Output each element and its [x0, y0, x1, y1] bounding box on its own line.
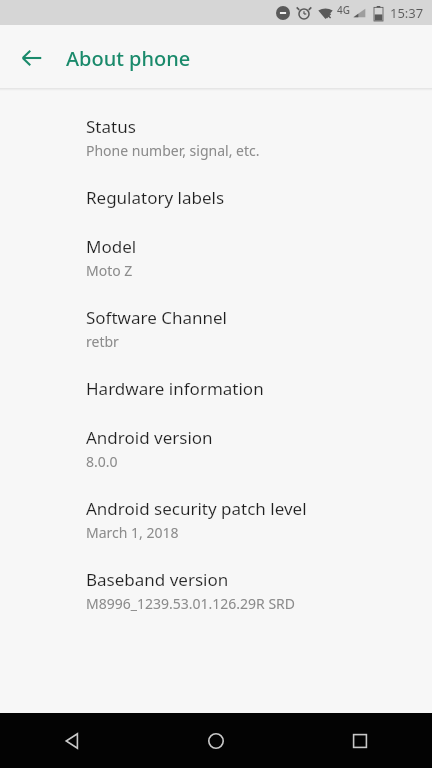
staticText: Android security patch level	[86, 497, 307, 520]
button[interactable]: Status	[0, 102, 432, 173]
button[interactable]: Recent apps	[288, 713, 432, 768]
staticText: Android version	[86, 426, 213, 449]
staticText: Baseband version	[86, 568, 229, 591]
staticText: 8.0.0	[86, 452, 118, 471]
staticText: 15:37	[390, 4, 424, 22]
staticText: Model	[86, 235, 137, 258]
button[interactable]: Hardware information	[0, 364, 432, 413]
button[interactable]: Software Channel	[0, 293, 432, 364]
staticText: M8996_1239.53.01.126.29R SRD	[86, 594, 296, 613]
staticText: Moto Z	[86, 261, 133, 280]
staticText: Regulatory labels	[86, 186, 225, 209]
button[interactable]: Baseband version	[0, 555, 432, 626]
staticText: 4G	[337, 3, 350, 17]
button[interactable]: Back	[8, 34, 56, 82]
button[interactable]: Regulatory labels	[0, 173, 432, 222]
staticText: retbr	[86, 332, 119, 351]
staticText: Phone number, signal, etc.	[86, 141, 260, 160]
button[interactable]: Android version	[0, 413, 432, 484]
button[interactable]: Android security patch level	[0, 484, 432, 555]
button[interactable]: Home	[144, 713, 288, 768]
staticText: Hardware information	[86, 377, 264, 400]
button[interactable]: Back	[0, 713, 144, 768]
button[interactable]: Model	[0, 222, 432, 293]
staticText: March 1, 2018	[86, 523, 179, 542]
staticText: Software Channel	[86, 306, 227, 329]
staticText: About phone	[66, 45, 191, 72]
staticText: Status	[86, 115, 136, 138]
